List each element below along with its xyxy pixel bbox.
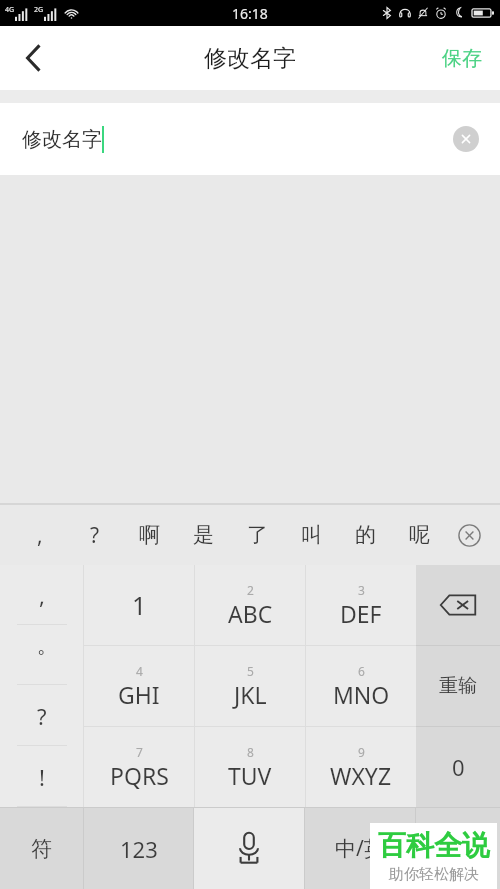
button[interactable]: 2 [195, 565, 305, 645]
button[interactable]: 7 [84, 727, 194, 807]
button[interactable]: ? [0, 685, 83, 746]
button[interactable]: 123 [84, 808, 193, 889]
staticText: 4 [136, 663, 143, 679]
staticText: DEF [340, 598, 382, 629]
staticText: 4G [5, 5, 15, 15]
staticText: 3 [358, 582, 365, 598]
staticText: 百科全说 [378, 828, 490, 863]
staticText: 是 [193, 522, 214, 548]
staticText: 6 [358, 663, 365, 679]
staticText: 中/英 [335, 834, 385, 863]
staticText: JKL [234, 679, 267, 710]
staticText: ? [37, 701, 47, 731]
button[interactable]: 修改名字 [0, 103, 500, 175]
button[interactable]: 呢 [392, 505, 446, 565]
staticText: MNO [333, 679, 390, 710]
staticText: 8 [247, 744, 254, 760]
staticText: 呢 [409, 522, 430, 548]
button[interactable]: 中/英 [305, 808, 415, 889]
staticText: 叫 [301, 522, 322, 548]
button[interactable]: Clear text [453, 126, 479, 152]
button[interactable]: 的 [338, 505, 392, 565]
button[interactable]: 符 [0, 808, 83, 889]
button[interactable]: Back [0, 26, 66, 90]
staticText: 保存 [442, 46, 482, 71]
staticText: 123 [120, 834, 158, 864]
staticText: GHI [118, 679, 160, 710]
button[interactable]: 4 [84, 646, 194, 726]
staticText: 7 [136, 744, 143, 760]
button[interactable]: Close keyboard [446, 505, 492, 565]
button[interactable]: 3 [306, 565, 416, 645]
button[interactable]: 了 [230, 505, 284, 565]
staticText: 5 [247, 663, 254, 679]
staticText: 修改名字 [22, 127, 102, 152]
staticText: 0 [452, 752, 465, 782]
button[interactable]: Backspace [416, 565, 500, 645]
button[interactable]: , [12, 505, 67, 565]
button[interactable]: 5 [195, 646, 305, 726]
staticText: 修改名字 [204, 44, 296, 73]
staticText: , [37, 521, 43, 550]
staticText: 重输 [439, 674, 477, 698]
button[interactable]: 重输 [416, 646, 500, 726]
staticText: 9 [358, 744, 365, 760]
button[interactable]: 啊 [122, 505, 176, 565]
staticText: 助你轻松解决 [389, 865, 479, 884]
staticText: ° [38, 645, 45, 665]
staticText: , [39, 580, 45, 610]
staticText: TUV [228, 760, 272, 791]
staticText: 了 [247, 522, 268, 548]
button[interactable]: 9 [306, 727, 416, 807]
staticText: 符 [31, 836, 52, 862]
staticText: 2G [34, 5, 44, 15]
staticText: ABC [228, 598, 273, 629]
button[interactable]: ! [0, 746, 83, 807]
button[interactable]: 8 [195, 727, 305, 807]
button[interactable]: , [0, 565, 83, 625]
staticText: ! [39, 762, 45, 792]
staticText: 2 [247, 582, 254, 598]
staticText: 16:18 [232, 4, 268, 23]
button[interactable]: 0 [416, 727, 500, 807]
staticText: PQRS [110, 760, 169, 791]
button[interactable]: 叫 [284, 505, 338, 565]
staticText: 1 [132, 588, 147, 622]
button[interactable]: 6 [306, 646, 416, 726]
button[interactable]: ° [0, 625, 83, 685]
button[interactable]: Enter [416, 808, 500, 889]
button[interactable]: ? [67, 505, 122, 565]
button[interactable]: 1 [84, 565, 194, 645]
button[interactable]: 是 [176, 505, 230, 565]
staticText: 的 [355, 522, 376, 548]
staticText: 啊 [139, 522, 160, 548]
button[interactable]: 保存 [424, 26, 500, 90]
button[interactable]: Voice input [194, 808, 304, 889]
staticText: ? [90, 521, 100, 550]
staticText: WXYZ [330, 760, 392, 791]
